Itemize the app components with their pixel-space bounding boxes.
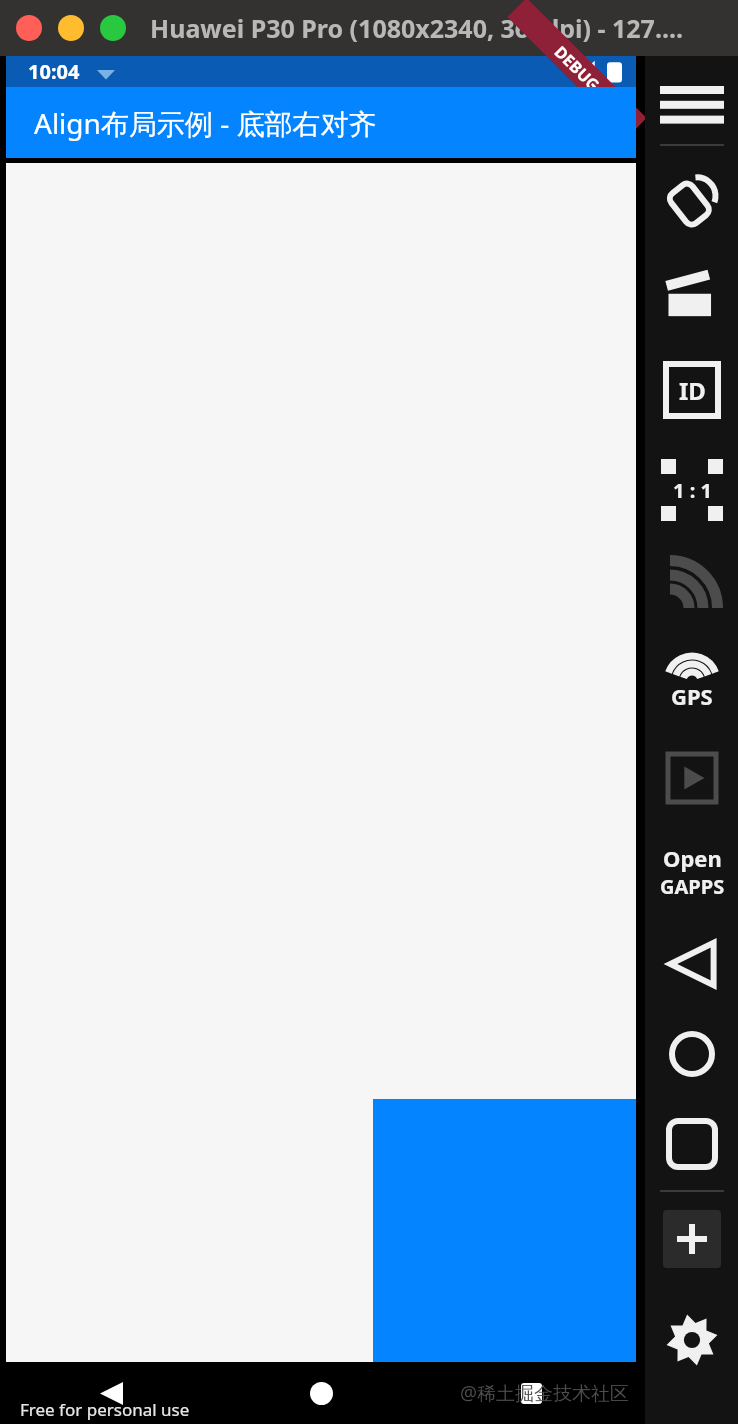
- button[interactable]: GPS: [646, 648, 738, 718]
- staticText: GAPPS: [660, 873, 725, 900]
- button[interactable]: Network: [646, 554, 738, 618]
- staticText: 10:04: [28, 58, 80, 85]
- staticText: Align布局示例 - 底部右对齐: [34, 104, 377, 142]
- button[interactable]: Scale 1 to 1: [646, 452, 738, 528]
- button[interactable]: Zoom: [100, 15, 126, 41]
- staticText: Open: [663, 843, 722, 873]
- button[interactable]: Record screen: [646, 264, 738, 328]
- staticText: DEBUG: [550, 41, 604, 95]
- button[interactable]: Add: [663, 1210, 721, 1268]
- staticText: Free for personal use: [20, 1398, 190, 1421]
- staticText: @稀土掘金技术社区: [460, 1380, 630, 1406]
- button[interactable]: Minimize: [58, 15, 84, 41]
- button[interactable]: Home: [646, 1022, 738, 1086]
- button[interactable]: Recent apps: [503, 1365, 559, 1421]
- staticText: GPS: [671, 681, 713, 711]
- button[interactable]: Home: [293, 1365, 349, 1421]
- staticText: ID: [679, 374, 706, 407]
- staticText: Huawei P30 Pro (1080x2340, 360dpi) - 127…: [150, 11, 684, 45]
- button[interactable]: Device ID: [646, 358, 738, 422]
- button[interactable]: Close: [16, 15, 42, 41]
- button[interactable]: Media: [646, 746, 738, 810]
- button[interactable]: Settings: [646, 1308, 738, 1372]
- button[interactable]: Menu: [646, 82, 738, 130]
- button[interactable]: Open GApps: [646, 836, 738, 906]
- button[interactable]: Rotate screen: [646, 170, 738, 234]
- button[interactable]: Back: [646, 932, 738, 996]
- button[interactable]: Recent apps: [646, 1112, 738, 1176]
- staticText: 1 : 1: [673, 477, 712, 504]
- button[interactable]: Back: [83, 1365, 139, 1421]
